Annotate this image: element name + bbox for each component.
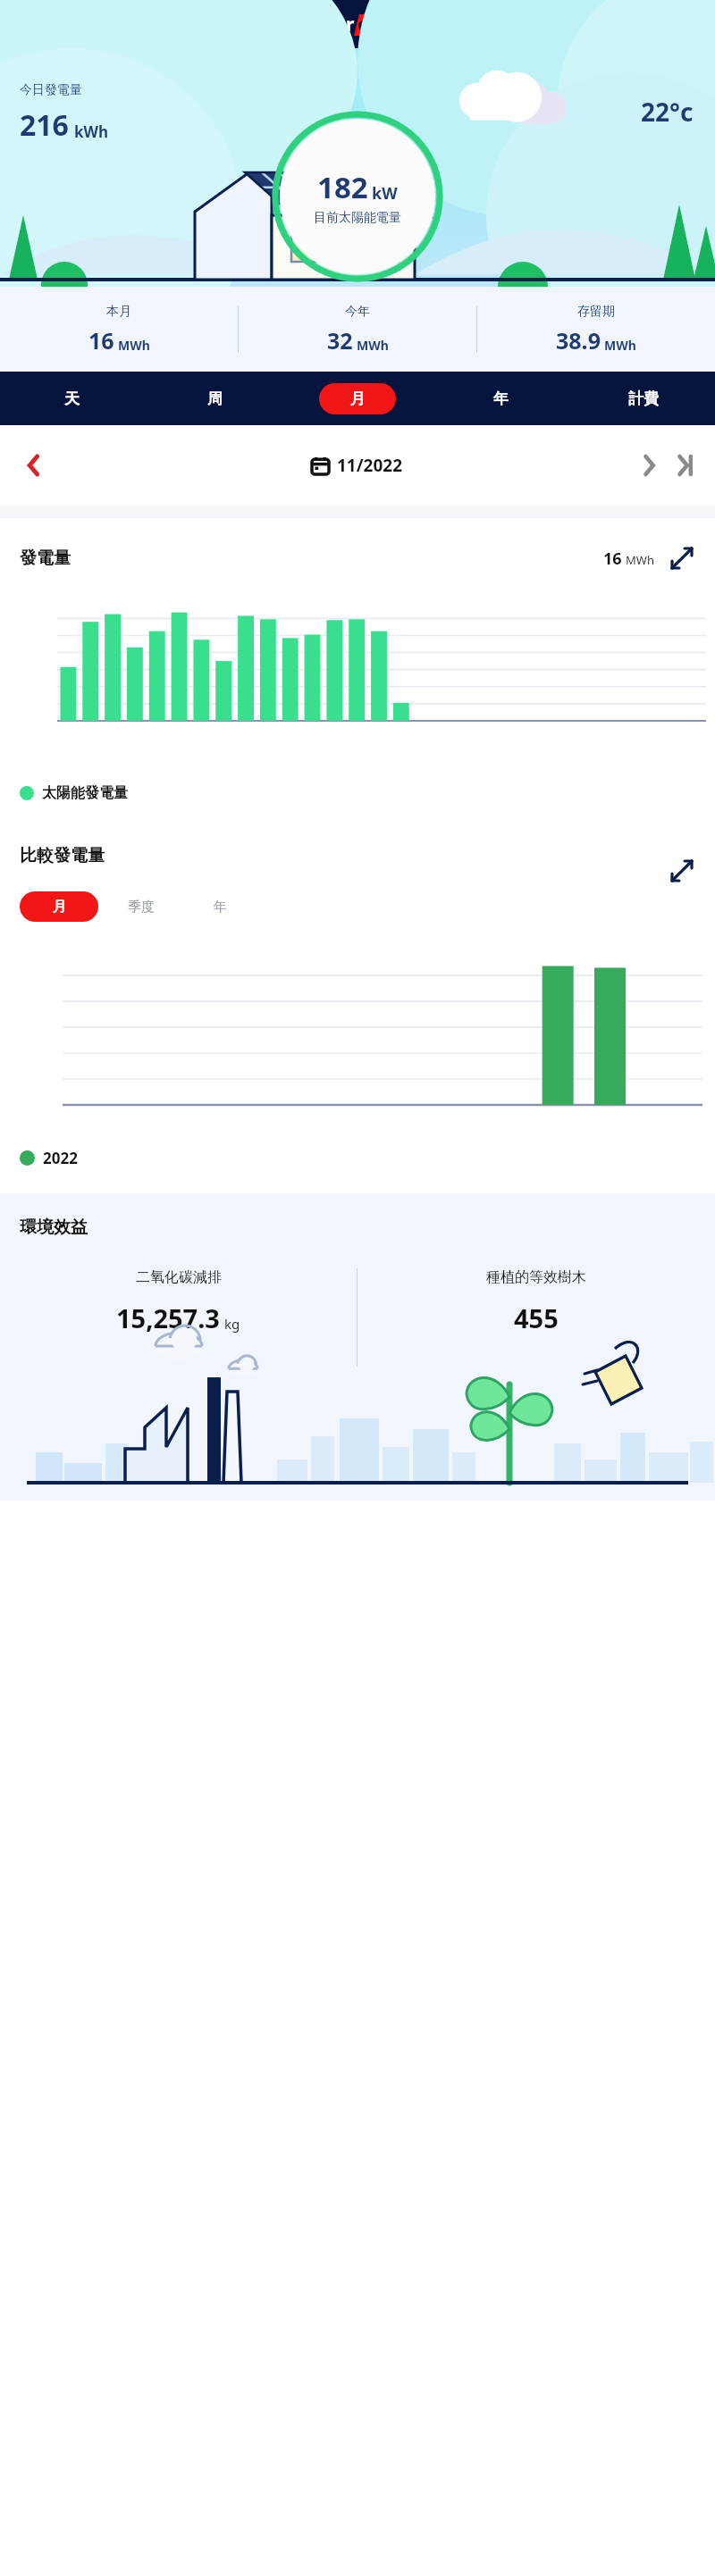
staticText: kWh <box>74 121 109 142</box>
button[interactable]: 年 <box>184 891 256 922</box>
staticText: 周 <box>207 389 223 408</box>
staticText: 15,257.3 <box>116 1301 220 1335</box>
staticText: 22°c <box>641 95 694 129</box>
staticText: 天 <box>64 389 80 408</box>
staticText: 32 <box>327 325 353 355</box>
button[interactable]: 存留期 <box>477 304 715 355</box>
staticText: 二氧化碳減排 <box>136 1268 222 1286</box>
button[interactable]: 太陽能發電量 <box>20 784 128 802</box>
staticText: 月 <box>53 899 66 916</box>
staticText: kg <box>224 1315 240 1333</box>
button[interactable]: 182 <box>272 111 443 282</box>
staticText: 38.9 <box>556 325 601 355</box>
staticText: MWh <box>604 337 636 354</box>
staticText: 月 <box>350 389 366 408</box>
staticText: 今日發電量 <box>20 82 82 98</box>
button[interactable]: 月 <box>286 372 429 425</box>
button[interactable]: Next period <box>631 447 667 483</box>
staticText: 發電量 <box>20 548 71 569</box>
staticText: 455 <box>514 1301 559 1335</box>
staticText: 計費 <box>628 389 659 408</box>
button[interactable]: Previous period <box>16 447 52 483</box>
button[interactable]: 年 <box>429 372 572 425</box>
staticText: MWh <box>357 337 389 354</box>
staticText: MWh <box>118 337 150 354</box>
button[interactable]: 11/2022 <box>312 454 403 477</box>
button[interactable]: 二氧化碳減排 <box>0 1268 357 1335</box>
button[interactable]: 計費 <box>572 372 715 425</box>
button[interactable]: Expand chart <box>669 857 695 884</box>
button[interactable]: 種植的等效樹木 <box>357 1268 715 1335</box>
staticText: edge <box>357 12 402 38</box>
staticText: 年 <box>214 899 227 916</box>
staticText: 16 <box>603 548 622 570</box>
staticText: 目前太陽能電量 <box>314 210 401 226</box>
staticText: 216 <box>20 105 69 145</box>
button[interactable]: Last period <box>667 447 702 483</box>
staticText: 種植的等效樹木 <box>486 1268 586 1286</box>
staticText: 太陽能發電量 <box>42 784 128 802</box>
staticText: 182 <box>317 167 368 207</box>
button[interactable]: 季度 <box>98 891 184 922</box>
staticText: solar <box>310 12 354 38</box>
staticText: 存留期 <box>577 304 615 320</box>
staticText: 2022 <box>43 1148 78 1168</box>
staticText: 環境效益 <box>20 1217 88 1238</box>
button[interactable]: 周 <box>143 372 286 425</box>
staticText: 年 <box>493 389 509 408</box>
button[interactable]: 2022 <box>20 1148 78 1168</box>
staticText: 11/2022 <box>337 454 403 477</box>
staticText: kW <box>372 182 398 205</box>
staticText: 16 <box>88 325 114 355</box>
staticText: 比較發電量 <box>20 845 105 866</box>
staticText: 今年 <box>345 304 370 320</box>
button[interactable]: 天 <box>0 372 143 425</box>
button[interactable]: 月 <box>20 891 98 922</box>
button[interactable]: Expand chart <box>669 545 695 572</box>
button[interactable]: 今年 <box>239 304 476 355</box>
staticText: 本月 <box>106 304 131 320</box>
staticText: 季度 <box>128 899 155 916</box>
staticText: MWh <box>626 552 654 568</box>
button[interactable]: 本月 <box>0 304 238 355</box>
